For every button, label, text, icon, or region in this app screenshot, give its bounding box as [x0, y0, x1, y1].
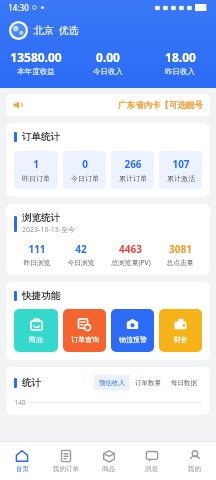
button[interactable]: 111: [14, 242, 59, 267]
staticText: 0.00: [96, 49, 120, 65]
staticText: 18.00: [165, 49, 196, 65]
staticText: 今日浏览: [67, 258, 95, 267]
staticText: 物流预警: [119, 335, 147, 344]
button[interactable]: 财务: [159, 309, 202, 352]
staticText: 42: [75, 242, 87, 256]
staticText: 总点击量: [166, 258, 194, 267]
staticText: 订单数量: [135, 379, 161, 387]
staticText: 累计订单: [119, 174, 147, 183]
staticText: 今日订单: [71, 174, 99, 183]
staticText: 预估收入: [99, 379, 125, 387]
button[interactable]: Announcement: [6, 94, 210, 116]
staticText: 我的订单: [53, 465, 79, 473]
staticText: 今日收入: [93, 67, 123, 76]
staticText: 订单查询: [71, 335, 99, 344]
staticText: 每日数据: [171, 379, 197, 387]
staticText: 111: [28, 242, 46, 256]
button[interactable]: 每日数据: [166, 375, 202, 390]
button[interactable]: 我的: [173, 442, 216, 480]
staticText: 北京 优选: [33, 23, 79, 37]
staticText: 140: [14, 398, 26, 407]
staticText: 107: [172, 157, 190, 171]
button[interactable]: 4463: [103, 242, 158, 267]
staticText: 昨日收入: [165, 67, 195, 76]
button[interactable]: 我的订单: [44, 442, 87, 480]
staticText: 财务: [174, 335, 188, 344]
staticText: 订单统计: [22, 131, 60, 143]
staticText: 统计: [22, 377, 41, 389]
button[interactable]: 消息: [130, 442, 173, 480]
staticText: 商品: [29, 335, 43, 344]
button[interactable]: 13580.00: [0, 49, 72, 76]
staticText: 本年度收益: [17, 67, 55, 76]
button[interactable]: 1: [14, 151, 58, 189]
staticText: 总浏览量(PV): [111, 258, 151, 267]
button[interactable]: 107: [159, 151, 202, 189]
staticText: 昨日订单: [22, 174, 50, 183]
staticText: 13580.00: [10, 49, 62, 65]
button[interactable]: 订单查询: [63, 309, 106, 352]
staticText: 广东省内卡【可选靓号: [118, 100, 203, 111]
staticText: 浏览统计: [22, 212, 60, 224]
button[interactable]: 0.00: [72, 49, 144, 76]
button[interactable]: 商品: [14, 309, 58, 352]
button[interactable]: 订单数量: [130, 375, 166, 390]
staticText: 消息: [145, 465, 158, 473]
staticText: 266: [124, 157, 142, 171]
staticText: 我的: [188, 465, 201, 473]
button[interactable]: 物流预警: [111, 309, 154, 352]
staticText: 累计激活: [167, 174, 195, 183]
other: Announcement: [13, 100, 23, 110]
staticText: 首页: [16, 465, 29, 473]
staticText: 2023-10-13-至今: [22, 225, 75, 235]
staticText: 昨日浏览: [23, 258, 51, 267]
button[interactable]: 预估收入: [94, 375, 130, 390]
button[interactable]: 18.00: [144, 49, 216, 76]
staticText: 快捷功能: [22, 290, 60, 302]
staticText: 商品: [102, 465, 115, 473]
button[interactable]: 3081: [158, 242, 202, 267]
button[interactable]: 0: [63, 151, 106, 189]
staticText: 1: [33, 157, 39, 171]
button[interactable]: 商品: [87, 442, 130, 480]
staticText: 14:30: [8, 2, 29, 13]
staticText: 3081: [169, 242, 192, 256]
button[interactable]: 42: [59, 242, 103, 267]
staticText: 4463: [119, 242, 142, 256]
button[interactable]: 266: [111, 151, 154, 189]
button[interactable]: 首页: [0, 442, 44, 480]
staticText: 0: [82, 157, 88, 171]
